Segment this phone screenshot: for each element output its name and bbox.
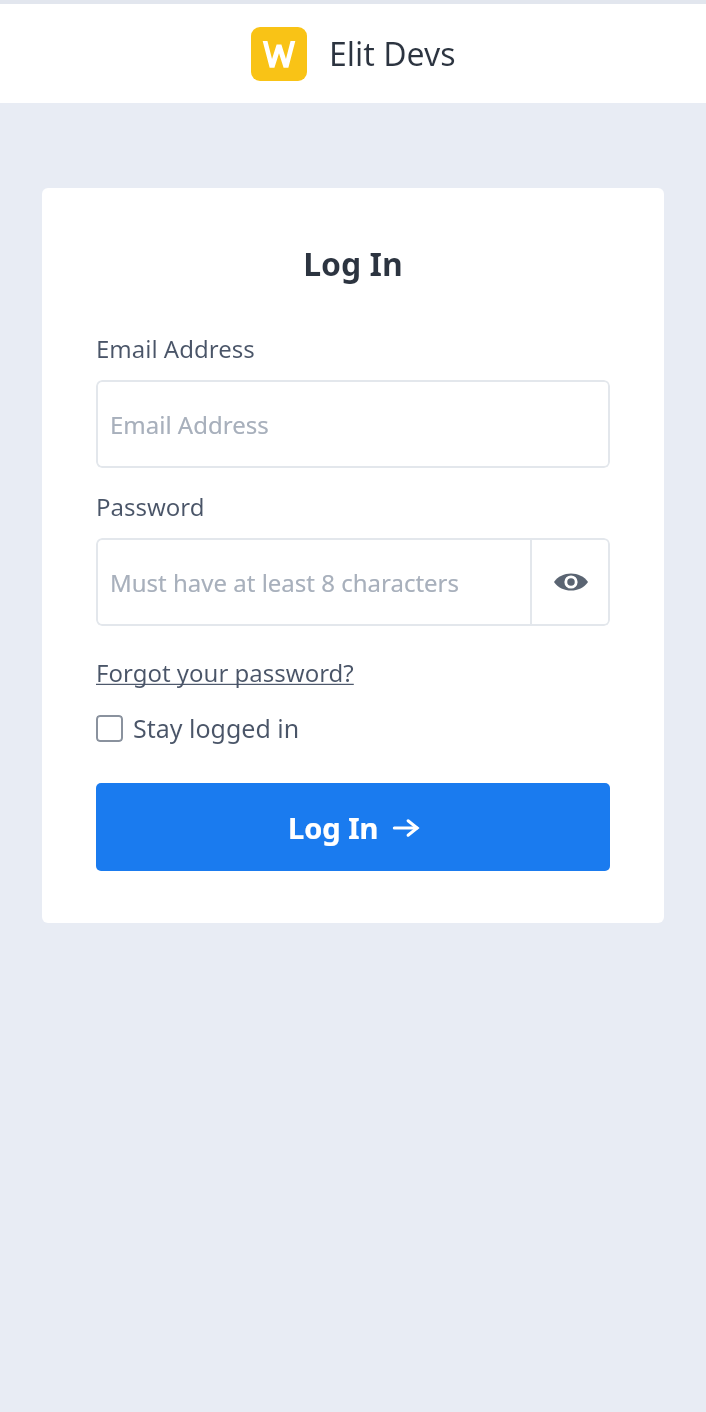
button[interactable]: Email Address — [96, 380, 610, 468]
staticText: Forgot your password? — [96, 656, 354, 689]
staticText: Password — [96, 490, 205, 523]
button[interactable]: Log In — [96, 783, 610, 871]
button[interactable]: Forgot your password? — [96, 656, 354, 689]
staticText: Log In — [96, 242, 610, 286]
button[interactable]: Must have at least 8 characters — [96, 538, 530, 626]
staticText: Log In — [288, 808, 379, 847]
staticText: Email Address — [96, 332, 255, 365]
button[interactable]: Stay logged in — [96, 711, 300, 745]
staticText: Email Address — [110, 408, 269, 441]
staticText: Must have at least 8 characters — [110, 566, 460, 599]
staticText: Elit Devs — [329, 32, 456, 76]
button[interactable]: Show password — [532, 538, 610, 626]
staticText: Stay logged in — [133, 711, 300, 745]
